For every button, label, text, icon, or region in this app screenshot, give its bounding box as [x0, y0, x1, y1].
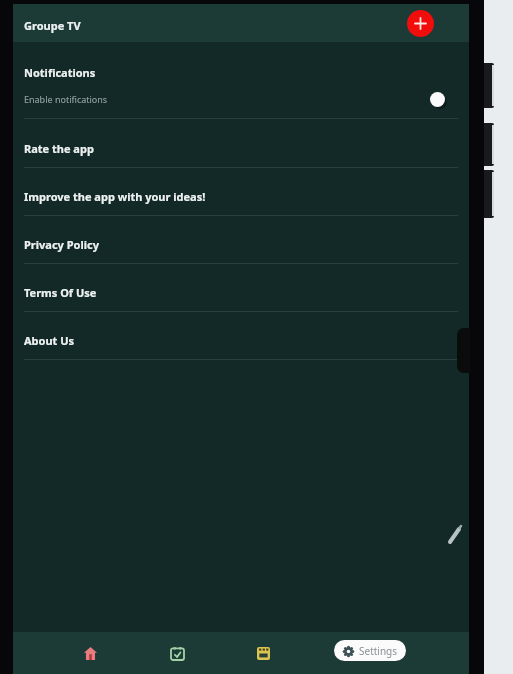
button[interactable]: Privacy Policy [13, 215, 469, 263]
staticText: Enable notifications [24, 93, 108, 105]
button[interactable] [164, 640, 191, 667]
button[interactable] [250, 640, 277, 667]
button[interactable]: Settings [334, 640, 406, 661]
staticText: About Us [24, 333, 75, 348]
button[interactable]: Rate the app [13, 119, 469, 167]
staticText: Privacy Policy [24, 237, 99, 252]
staticText: Terms Of Use [24, 285, 97, 300]
button[interactable]: About Us [13, 311, 469, 359]
button[interactable]: Notifications [13, 42, 469, 119]
staticText: Notifications [24, 65, 96, 80]
button[interactable] [407, 10, 434, 37]
staticText: Settings [359, 644, 398, 658]
staticText: Improve the app with your ideas! [24, 189, 206, 204]
button[interactable] [77, 640, 104, 667]
button[interactable]: Terms Of Use [13, 263, 469, 311]
button[interactable] [430, 92, 445, 107]
staticText: Groupe TV [24, 18, 81, 33]
staticText: Rate the app [24, 141, 94, 156]
button[interactable]: Improve the app with your ideas! [13, 167, 469, 215]
